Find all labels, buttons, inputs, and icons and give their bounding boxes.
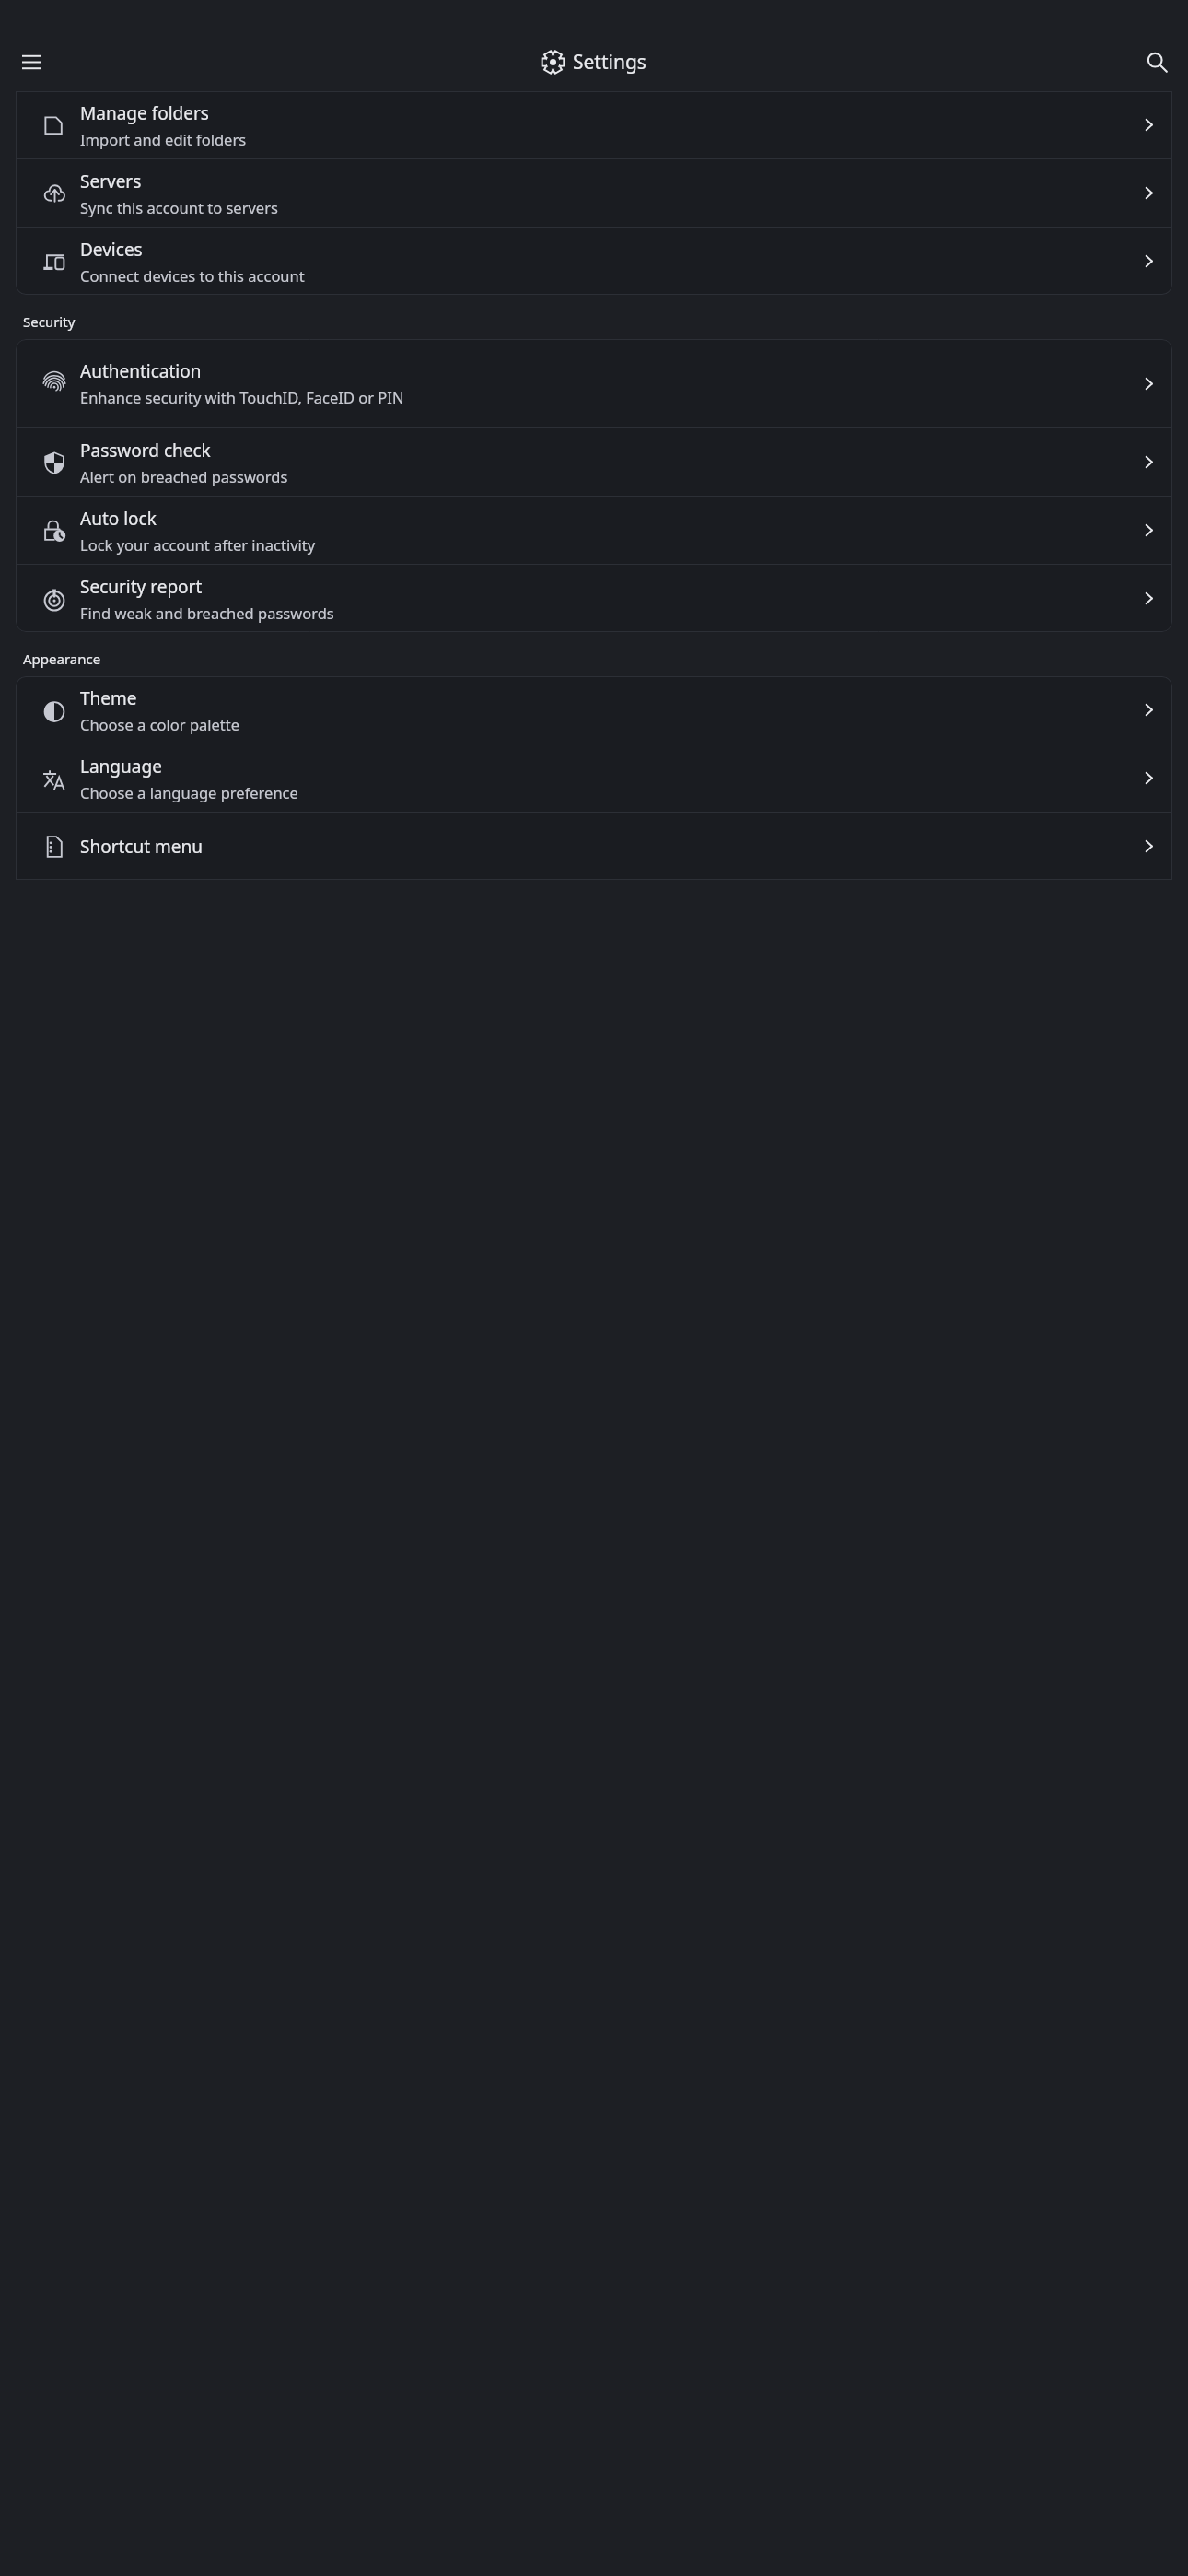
staticText: Sync this account to servers (80, 197, 278, 217)
staticText: Authentication (80, 359, 202, 383)
button[interactable]: Authentication (16, 339, 1172, 427)
staticText: Password check (80, 439, 211, 463)
staticText: Theme (80, 686, 137, 710)
staticText: Security report (80, 575, 203, 599)
staticText: Choose a language preference (80, 782, 298, 802)
button[interactable]: Manage folders (16, 91, 1172, 158)
staticText: Language (80, 755, 162, 779)
button[interactable]: Servers (16, 159, 1172, 227)
staticText: Connect devices to this account (80, 265, 305, 286)
button[interactable]: Security report (16, 565, 1172, 632)
button[interactable]: Search (1135, 40, 1179, 84)
staticText: Alert on breached passwords (80, 466, 288, 486)
staticText: Choose a color palette (80, 714, 240, 734)
staticText: Shortcut menu (80, 835, 204, 859)
staticText: Manage folders (80, 101, 209, 125)
button[interactable]: Shortcut menu (16, 813, 1172, 880)
staticText: Lock your account after inactivity (80, 534, 316, 555)
staticText: Import and edit folders (80, 129, 247, 149)
button[interactable]: Password check (16, 428, 1172, 496)
button[interactable]: Auto lock (16, 497, 1172, 564)
button[interactable]: Language (16, 744, 1172, 812)
staticText: Enhance security with TouchID, FaceID or… (80, 387, 404, 407)
staticText: Servers (80, 170, 142, 193)
staticText: Auto lock (80, 507, 157, 531)
staticText: Find weak and breached passwords (80, 603, 334, 623)
button[interactable]: Devices (16, 228, 1172, 295)
staticText: Devices (80, 238, 143, 262)
staticText: Security (23, 312, 76, 331)
button[interactable]: Open navigation menu (9, 40, 53, 84)
staticText: Settings (573, 49, 646, 76)
staticText: Appearance (23, 650, 101, 668)
button[interactable]: Theme (16, 676, 1172, 744)
